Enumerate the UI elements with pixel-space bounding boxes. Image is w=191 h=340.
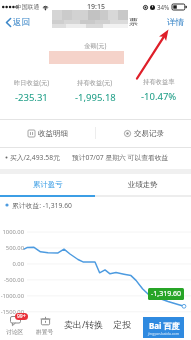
staticText: Bai 百度 — [149, 320, 180, 331]
staticText: -1000.00 — [0, 292, 24, 300]
staticText: 500.00 — [5, 244, 24, 252]
staticText: 讨论区 — [6, 328, 24, 335]
staticText: 0.00 — [12, 260, 24, 268]
staticText: 昨日收益(元) — [14, 78, 50, 87]
staticText: 中国联通 — [16, 3, 40, 10]
staticText: jingyan.baidu.com — [148, 331, 180, 336]
staticText: -500.00 — [4, 276, 24, 284]
staticText: 斟置号 — [36, 328, 54, 335]
button[interactable]: 定投 — [111, 308, 133, 340]
staticText: -1,319.60 — [151, 289, 182, 299]
staticText: 持有收益率 — [143, 78, 175, 86]
staticText: -10.47% — [141, 90, 177, 103]
staticText: 19:15 — [87, 2, 105, 12]
staticText: 金额(元) — [84, 41, 107, 49]
staticText: 票 — [129, 16, 138, 27]
staticText: 持有收益(元) — [77, 78, 113, 87]
staticText: 34% — [157, 3, 170, 11]
button[interactable]: 返回 — [0, 15, 35, 30]
staticText: 收益明细 — [38, 129, 68, 138]
button[interactable]: 收益明细 — [0, 119, 95, 147]
staticText: -1500.00 — [0, 308, 24, 316]
staticText: 业绩走势 — [128, 180, 158, 189]
staticText: 累计盈亏 — [33, 180, 63, 189]
button[interactable]: 讨论区 — [0, 308, 30, 340]
button[interactable]: 斟置号 — [30, 308, 60, 340]
staticText: 定投 — [113, 319, 131, 330]
staticText: 卖出/转换 — [64, 318, 104, 330]
staticText: 交易记录 — [134, 129, 164, 138]
staticText: 1000.00 — [2, 228, 24, 236]
staticText: 详情 — [167, 17, 184, 28]
staticText: 买入/2,493.58元 — [10, 153, 60, 162]
staticText: 预计07/07 星期六 可以查看收益 — [72, 153, 169, 162]
button[interactable]: 累计盈亏 — [0, 174, 95, 195]
button[interactable]: 详情 — [160, 15, 191, 30]
staticText: -235.31 — [15, 91, 48, 104]
staticText: -1,995.18 — [75, 91, 116, 104]
staticText: 返回 — [13, 17, 30, 28]
button[interactable]: 卖出/转换 — [62, 308, 106, 340]
button[interactable]: 业绩走势 — [95, 174, 191, 195]
staticText: 99+ — [17, 313, 26, 320]
staticText: 累计收益: -1,319.60 — [12, 201, 72, 210]
button[interactable]: 交易记录 — [96, 119, 191, 147]
